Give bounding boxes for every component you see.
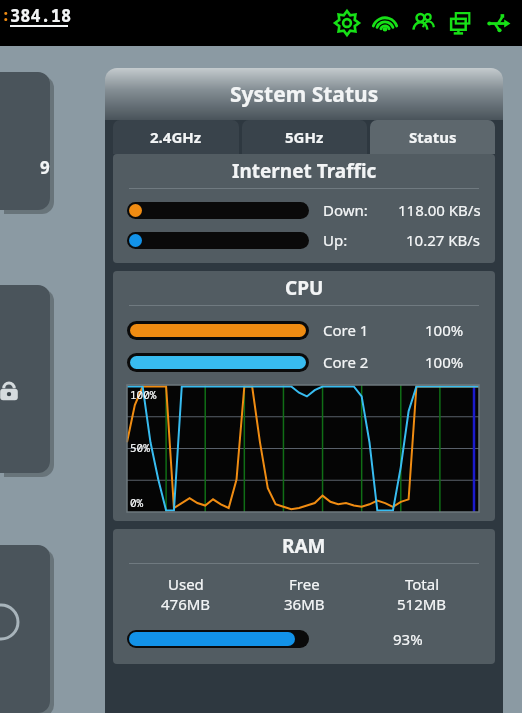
staticText: Free xyxy=(289,574,320,594)
button[interactable] xyxy=(0,285,50,473)
button[interactable]: 5GHz xyxy=(242,120,367,154)
staticText: 9 xyxy=(40,156,50,179)
staticText: 50% xyxy=(130,440,150,455)
button[interactable]: Status xyxy=(370,120,495,154)
staticText: 512MB xyxy=(397,594,447,614)
staticText: CPU xyxy=(285,275,324,301)
staticText: Internet Traffic xyxy=(232,158,377,184)
button[interactable]: Wi-Fi xyxy=(370,8,400,38)
staticText: : xyxy=(1,4,11,26)
staticText: System Status xyxy=(230,80,379,109)
button[interactable] xyxy=(0,545,50,713)
button[interactable]: 2.4GHz xyxy=(113,120,239,154)
staticText: Down: xyxy=(323,200,368,220)
button[interactable]: Users xyxy=(408,8,438,38)
button[interactable] xyxy=(0,72,50,210)
button[interactable]: Devices xyxy=(446,8,476,38)
staticText: RAM xyxy=(282,533,326,559)
staticText: Used xyxy=(168,574,204,594)
staticText: 100% xyxy=(130,387,157,402)
button[interactable]: Settings xyxy=(332,8,362,38)
staticText: Status xyxy=(409,127,457,147)
staticText: 0% xyxy=(130,495,144,510)
staticText: 118.00 KB/s xyxy=(398,200,481,220)
staticText: 5GHz xyxy=(285,127,324,147)
staticText: 10.27 KB/s xyxy=(406,230,481,250)
button[interactable]: USB xyxy=(484,8,514,38)
staticText: Core 1 xyxy=(323,320,369,340)
staticText: 384.18 xyxy=(10,4,72,27)
staticText: 100% xyxy=(425,320,464,340)
staticText: Up: xyxy=(323,230,348,250)
staticText: 476MB xyxy=(161,594,211,614)
staticText: 36MB xyxy=(284,594,325,614)
staticText: 93% xyxy=(393,629,423,649)
staticText: Total xyxy=(405,574,440,594)
staticText: 100% xyxy=(425,352,464,372)
staticText: Core 2 xyxy=(323,352,369,372)
staticText: 2.4GHz xyxy=(150,127,202,147)
